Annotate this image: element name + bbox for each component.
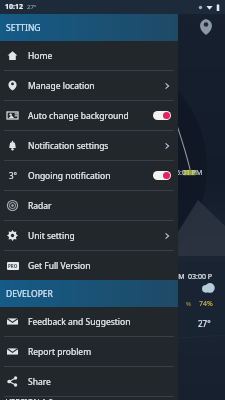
staticText: Radar	[28, 200, 52, 212]
button[interactable]: Auto change background	[0, 101, 178, 130]
staticText: 3°	[9, 170, 17, 181]
staticText: PM	[174, 272, 185, 282]
button[interactable]: Radar	[0, 191, 178, 220]
button[interactable]: Manage location	[0, 71, 178, 100]
staticText: 6:01 PM	[176, 168, 203, 178]
staticText: 10:12	[5, 2, 23, 12]
staticText: PRO	[8, 263, 18, 269]
button[interactable]: 3°	[0, 161, 178, 190]
button[interactable]: PRO	[0, 251, 178, 280]
button[interactable]: Share	[0, 367, 178, 396]
staticText: Auto change background	[28, 110, 129, 122]
staticText: %	[186, 300, 191, 308]
staticText: SETTING	[6, 22, 41, 34]
button[interactable]: Notification settings	[0, 131, 178, 160]
staticText: Ongoing notification	[28, 170, 111, 182]
staticText: VERSION 1.0	[6, 397, 54, 400]
staticText: Home	[28, 50, 53, 62]
staticText: Get Full Version	[28, 260, 91, 272]
staticText: Share	[28, 376, 51, 388]
staticText: Notification settings	[28, 140, 109, 152]
staticText: 74%	[199, 299, 213, 309]
button[interactable]: Location	[197, 18, 215, 36]
staticText: 27°	[27, 3, 37, 11]
button[interactable]: Unit setting	[0, 221, 178, 250]
staticText: Unit setting	[28, 230, 75, 242]
staticText: Report problem	[28, 346, 92, 358]
staticText: Manage location	[28, 80, 95, 92]
staticText: Feedback and Suggestion	[28, 316, 131, 328]
button[interactable]: Report problem	[0, 337, 178, 366]
staticText: DEVELOPER	[6, 288, 53, 300]
staticText: 27°	[198, 318, 211, 329]
button[interactable]: Home	[0, 41, 178, 70]
staticText: 03:00 P	[188, 272, 212, 282]
button[interactable]: Feedback and Suggestion	[0, 307, 178, 336]
